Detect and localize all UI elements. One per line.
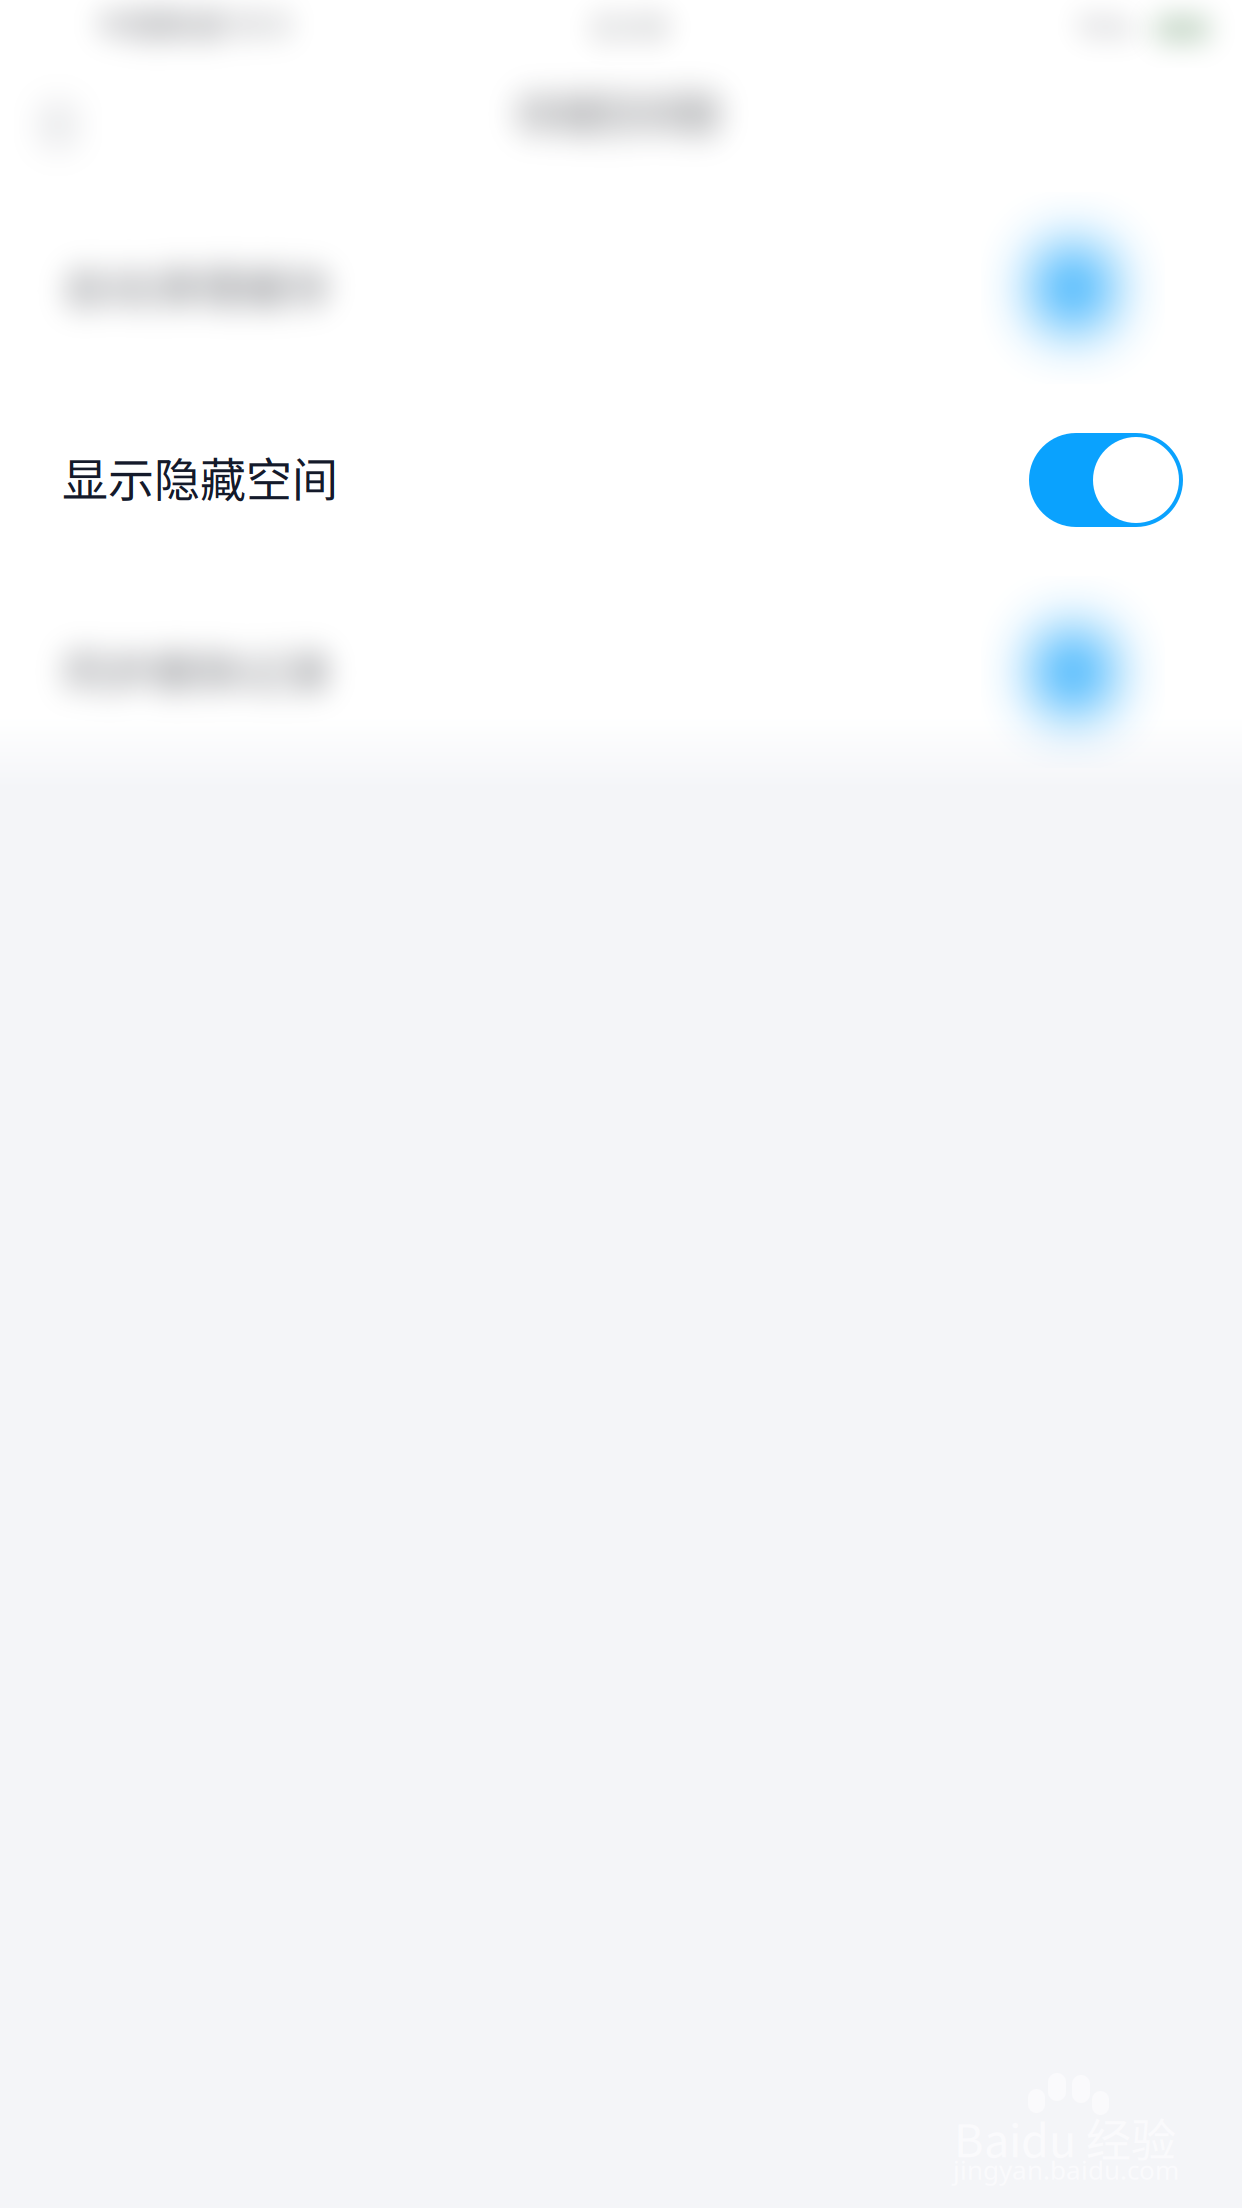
button[interactable]: 显示隐藏空间 xyxy=(0,381,1242,573)
button[interactable]: 自动清理缓存 xyxy=(0,189,1242,381)
button[interactable]: 同步删除记录 xyxy=(0,573,1242,765)
button[interactable]: Back xyxy=(0,62,150,189)
staticText: 显示隐藏空间 xyxy=(62,443,338,510)
